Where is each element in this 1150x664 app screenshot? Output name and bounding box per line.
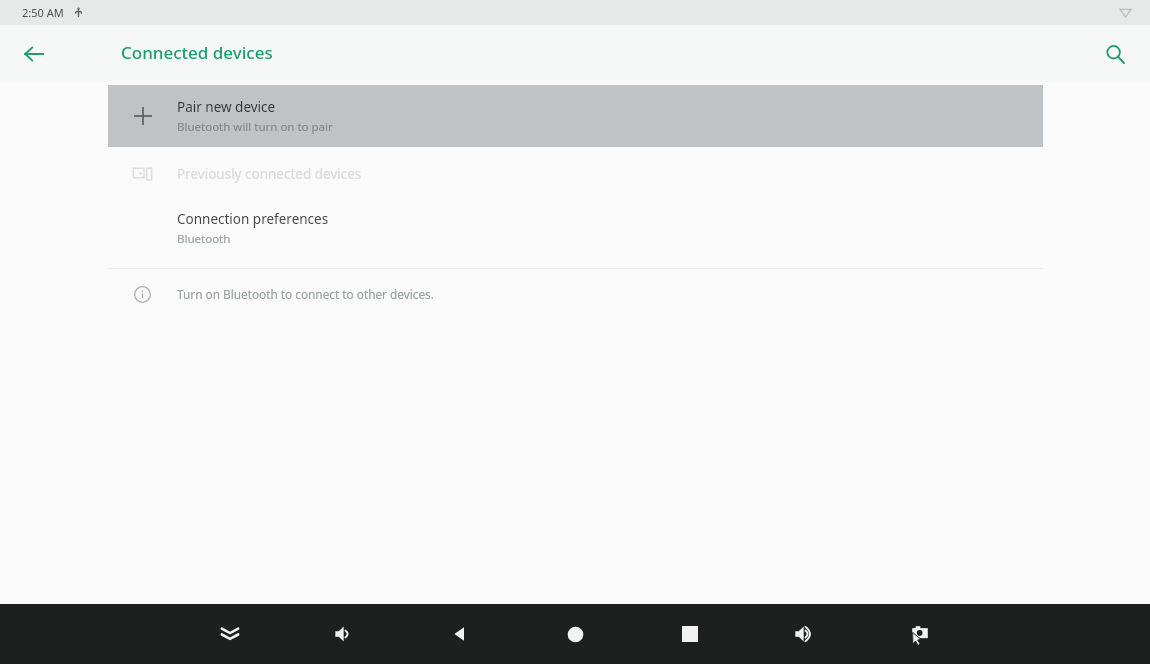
button[interactable]: Screenshot [895, 609, 945, 659]
button[interactable]: Volume down [320, 609, 370, 659]
button[interactable]: Connection preferences [108, 200, 1043, 257]
staticText: Previously connected devices [177, 165, 362, 183]
staticText: Turn on Bluetooth to connect to other de… [177, 286, 434, 302]
button[interactable]: Volume up [780, 609, 830, 659]
button[interactable]: Pair new device [108, 85, 1043, 147]
button[interactable]: Recent apps [665, 609, 715, 659]
staticText: Bluetooth will turn on to pair [177, 119, 333, 135]
button[interactable]: Back [435, 609, 485, 659]
staticText: Bluetooth [177, 231, 231, 247]
staticText: Connection preferences [177, 210, 329, 228]
staticText: 2:50 AM [22, 5, 64, 20]
staticText: Connected devices [121, 41, 273, 64]
button[interactable]: Previously connected devices [108, 147, 1043, 200]
button[interactable]: Collapse [205, 609, 255, 659]
staticText: Pair new device [177, 98, 276, 116]
button[interactable]: Search [1094, 33, 1136, 75]
button[interactable]: Back [14, 34, 54, 74]
button[interactable]: Home [550, 609, 600, 659]
